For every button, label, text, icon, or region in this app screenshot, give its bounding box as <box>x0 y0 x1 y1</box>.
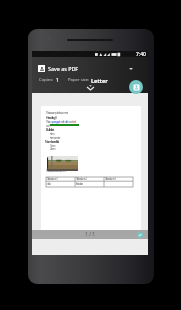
staticText: 7:40 <box>136 51 146 57</box>
staticText: • item or note <box>50 136 60 140</box>
staticText: with <box>61 120 65 124</box>
staticText: a paragraph <box>51 120 61 124</box>
button[interactable]: Letter <box>91 76 108 84</box>
staticText: Table column 2 <box>76 177 87 181</box>
staticText: Letter <box>91 77 108 84</box>
staticText: this is data <box>76 182 83 186</box>
staticText: red <box>73 120 76 124</box>
staticText: Save as PDF <box>48 65 79 72</box>
staticText: Heading 1 <box>46 115 57 120</box>
staticText: 1. item <box>50 144 55 148</box>
staticText: Numbered list <box>45 140 59 144</box>
button[interactable]: Copies: <box>39 76 54 84</box>
staticText: Table column 1 <box>47 177 58 181</box>
staticText: Bullet list <box>46 128 54 132</box>
button[interactable]: Print <box>129 80 143 94</box>
staticText: and <box>69 120 73 124</box>
staticText: and <box>46 124 50 128</box>
staticText: 2. item <box>50 147 55 151</box>
staticText: Paper size: <box>68 77 90 83</box>
button[interactable]: Done <box>137 232 143 238</box>
staticText: Copies: <box>39 77 54 83</box>
staticText: This is a table with columns <box>46 169 66 173</box>
button[interactable]: Expand print options <box>32 84 148 93</box>
button[interactable]: Save as PDF <box>32 62 148 75</box>
staticText: a link <box>65 120 69 124</box>
staticText: data <box>47 182 51 186</box>
staticText: This is <box>46 120 51 124</box>
staticText: 1 / 1 <box>85 231 96 238</box>
staticText: • item <box>50 132 55 136</box>
staticText: 1 <box>56 77 59 84</box>
staticText: This is a sample document <box>46 111 68 115</box>
staticText: Table column 3 <box>105 177 116 181</box>
